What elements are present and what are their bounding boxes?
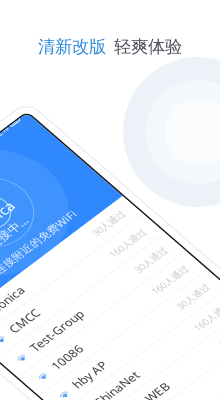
staticText: Office-2: [40, 393, 84, 400]
staticText: 连接中…: [92, 87, 137, 102]
staticText: 30人通过: [170, 255, 207, 268]
staticText: Monica: [40, 141, 81, 157]
staticText: CMCC-WEB: [40, 309, 104, 325]
staticText: 轻爽体验: [114, 36, 182, 57]
staticText: 清新改版: [38, 36, 106, 57]
staticText: 160人通过: [165, 227, 207, 240]
staticText: CMCC: [40, 169, 74, 185]
staticText: hby AP: [40, 253, 78, 269]
staticText: 30人通过: [170, 311, 207, 324]
staticText: Test-Group: [40, 197, 102, 213]
staticText: 10086: [40, 225, 75, 241]
staticText: Xiaomi_5G: [40, 365, 99, 381]
staticText: 正在连接附近的免费WiFi: [54, 112, 175, 127]
staticText: TP-LINK_3F: [40, 337, 102, 353]
staticText: 160人通过: [165, 283, 207, 296]
staticText: 30人通过: [170, 199, 207, 212]
